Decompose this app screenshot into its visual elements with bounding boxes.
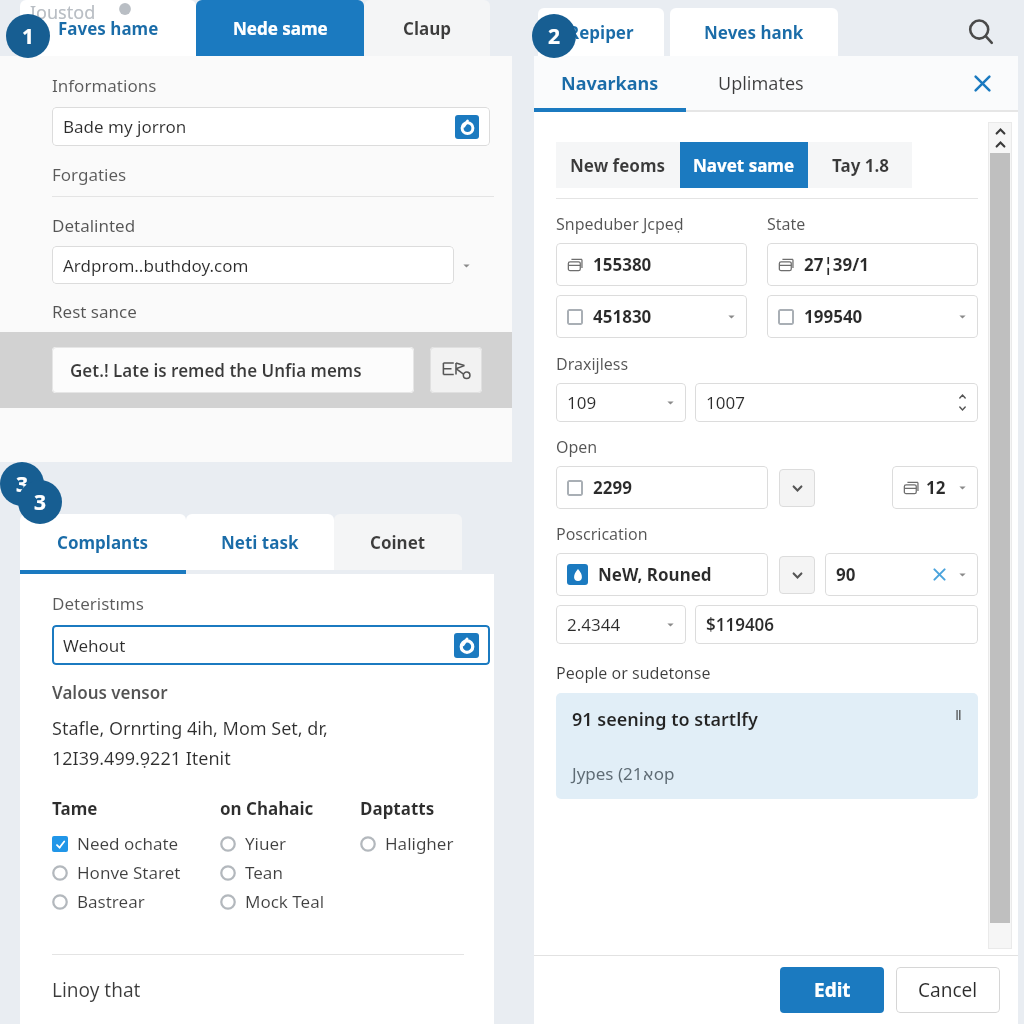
button[interactable]: Open picker [455,115,479,139]
button[interactable]: 2.4344 [556,605,686,644]
button[interactable]: Nede same [196,0,364,56]
button[interactable]: Tay 1.8 [808,142,912,188]
staticText: 451830 [593,305,727,328]
staticText: Ardprom..buthdoy.com [63,254,443,277]
button[interactable]: Repiper [538,8,664,56]
button[interactable]: 109 [556,383,686,422]
staticText: Open [556,436,598,458]
button[interactable]: 155380 [556,243,747,286]
staticText: Faves hame [58,17,159,40]
staticText: State [767,213,806,235]
staticText: Jypes (א21op [572,762,675,785]
staticText: Ⅱ [955,707,962,723]
staticText: Draxijless [556,353,629,375]
staticText: 2.4344 [567,613,666,636]
staticText: Need ochate [77,832,179,855]
staticText: Nede same [233,17,328,40]
staticText: Cancel [918,977,978,1003]
staticText: Yiuer [245,832,287,855]
button[interactable]: 199540 [767,295,978,338]
button[interactable]: Cancel [896,967,1000,1013]
button[interactable]: Wehout [52,625,490,665]
staticText: Bade my jorron [63,115,455,138]
button[interactable]: Coinet [334,514,462,570]
button[interactable]: Expand [779,469,815,507]
staticText: Complants [57,531,149,554]
staticText: Uplimates [718,71,804,96]
staticText: Informations [52,74,157,97]
staticText: 2 [548,22,561,51]
button[interactable]: Neves hank [670,8,838,56]
button[interactable]: Need ochate [52,831,220,856]
button[interactable]: Mock Teal [220,889,360,914]
staticText: 3 [16,470,29,499]
button[interactable]: New feoms [556,142,680,188]
button[interactable]: Navet same [680,142,808,188]
staticText: Snpeduber Jcpeḍ [556,213,684,235]
button[interactable]: Complants [20,514,186,570]
staticText: Ioustod [30,0,96,25]
button[interactable]: 91 seening to startlfy [556,693,978,799]
staticText: 3 [34,488,47,517]
button[interactable]: Close [958,59,1006,107]
button[interactable]: Haligher [360,831,480,856]
staticText: Linoy that [52,977,141,1003]
button[interactable]: Faves hame [20,0,196,56]
button[interactable]: Edit [780,967,884,1013]
button[interactable]: Honve Staret [52,860,220,885]
button[interactable]: 12 [892,466,978,509]
button[interactable]: Search [956,8,1006,56]
staticText: Neves hank [704,21,804,44]
staticText: 1 [22,22,35,51]
staticText: Edit [814,977,851,1003]
staticText: Tay 1.8 [832,154,889,177]
staticText: 91 seening to startlfy [572,707,955,732]
staticText: Tean [245,861,283,884]
staticText: Navet same [693,154,795,177]
button[interactable]: NeW, Rouned [556,553,768,596]
button[interactable]: Claup [364,0,490,56]
staticText: 2299 [593,476,632,499]
staticText: Mock Teal [245,890,325,913]
button[interactable]: Uplimates [686,56,836,110]
button[interactable]: 451830 [556,295,747,338]
staticText: New feoms [570,154,666,177]
staticText: Navarkans [561,71,659,96]
button[interactable]: Editor [430,347,482,393]
staticText: 90 [836,563,931,586]
staticText: NeW, Rouned [598,563,712,586]
button[interactable]: Expand [779,556,815,594]
button[interactable]: Navarkans [534,56,686,110]
staticText: Wehout [63,634,454,657]
button[interactable]: Open picker [454,633,479,658]
button[interactable]: 27¦39/1 [767,243,978,286]
staticText: on Chahaic [220,797,314,820]
button[interactable]: 2299 [556,466,768,509]
staticText: 109 [567,391,666,414]
staticText: Detalinted [52,214,136,237]
staticText: Claup [403,17,451,40]
staticText: Stafle, Ornrting 4ih, Mom Set, dr, [52,716,328,741]
button[interactable]: Neti task [186,514,334,570]
staticText: Forgaties [52,163,127,186]
staticText: $119406 [706,613,775,636]
staticText: Daptatts [360,797,435,820]
staticText: Repiper [568,21,634,44]
staticText: Get.! Late is remed the Unfia mems [70,359,362,382]
staticText: Coinet [370,531,426,554]
staticText: Poscrication [556,523,648,545]
staticText: Deteristıms [52,592,144,615]
staticText: 155380 [593,253,652,276]
button[interactable]: Yiuer [220,831,360,856]
button[interactable]: Get.! Late is remed the Unfia mems [52,347,414,393]
button[interactable]: Ardprom..buthdoy.com [52,246,454,284]
button[interactable]: $119406 [695,605,978,644]
button[interactable]: 1007 [695,383,978,422]
button[interactable]: Bastrear [52,889,220,914]
button[interactable]: Tean [220,860,360,885]
staticText: Neti task [221,531,299,554]
staticText: Valous vensor [52,681,168,704]
button[interactable]: 90 [825,553,978,596]
button[interactable]: Bade my jorron [52,107,490,146]
staticText: Rest sance [52,300,137,323]
